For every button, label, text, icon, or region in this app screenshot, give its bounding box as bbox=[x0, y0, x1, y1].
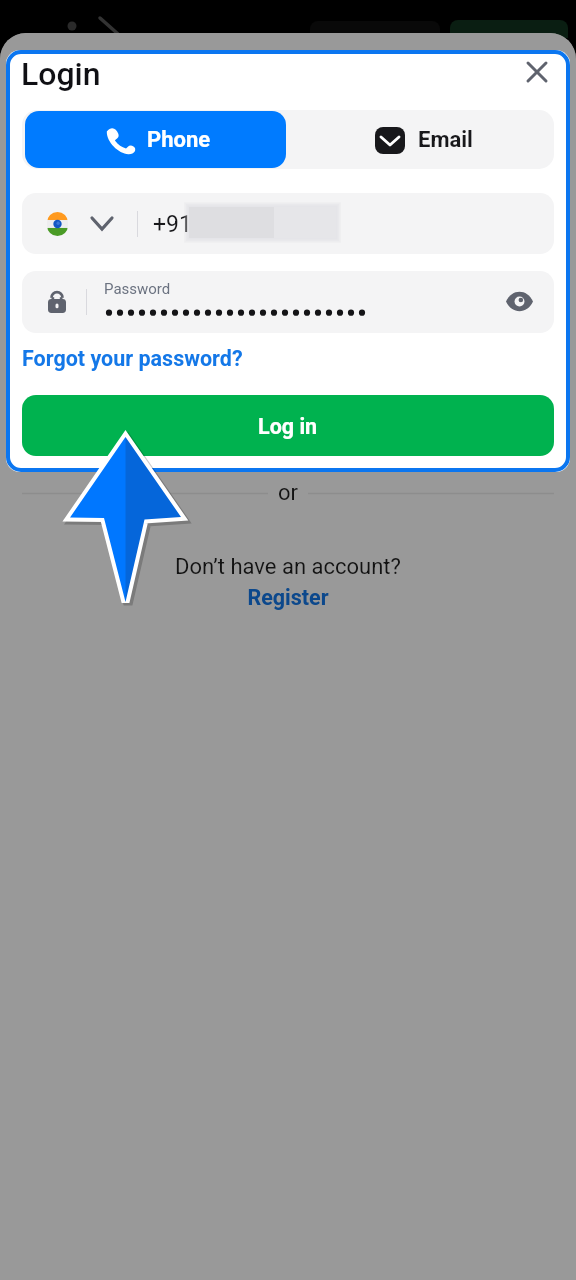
button[interactable]: Show password bbox=[496, 278, 542, 324]
staticText: Login bbox=[21, 55, 101, 93]
staticText: Password bbox=[104, 280, 171, 298]
button[interactable]: +91 bbox=[22, 193, 554, 254]
staticText: Log in bbox=[258, 414, 318, 439]
button[interactable]: Phone bbox=[25, 111, 286, 168]
button[interactable]: Forgot your password? bbox=[21, 346, 244, 371]
button[interactable]: Close bbox=[517, 52, 557, 92]
button[interactable]: Log in bbox=[22, 395, 554, 456]
button[interactable]: Email bbox=[290, 110, 554, 169]
staticText: Don’t have an account? bbox=[0, 554, 576, 580]
staticText: Phone bbox=[147, 127, 211, 153]
staticText: Register bbox=[247, 585, 329, 610]
staticText: +91 bbox=[153, 211, 192, 238]
staticText: Forgot your password? bbox=[22, 346, 243, 371]
staticText: Email bbox=[418, 127, 473, 153]
button[interactable]: Register bbox=[0, 585, 576, 610]
staticText: or bbox=[278, 480, 299, 506]
